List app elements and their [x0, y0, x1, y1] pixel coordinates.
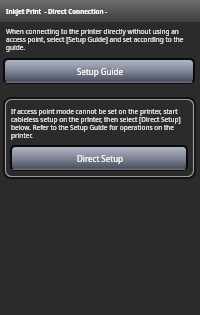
staticText: When connecting to the printer directly …	[6, 27, 194, 52]
staticText: Setup Guide	[77, 66, 123, 77]
button[interactable]: Setup Guide	[3, 58, 195, 84]
staticText: Inkjet Print - Direct Connection -	[6, 7, 108, 15]
staticText: Direct Setup	[77, 153, 124, 164]
button[interactable]: Direct Setup	[10, 145, 188, 171]
staticText: If access point mode cannot be set on th…	[11, 107, 189, 140]
